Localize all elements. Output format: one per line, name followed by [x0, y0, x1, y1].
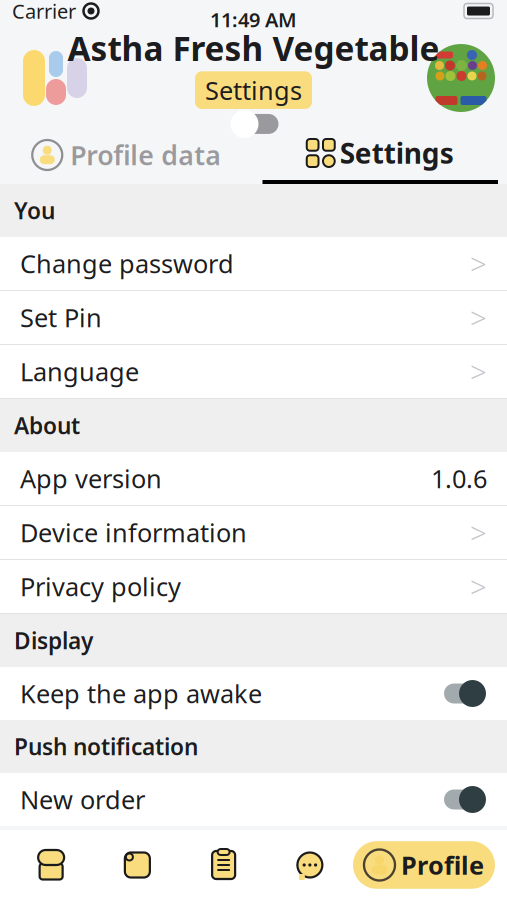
staticText: > [470, 567, 487, 606]
staticText: Change password [20, 247, 234, 280]
staticText: Set Pin [20, 301, 102, 334]
staticText: Device information [20, 516, 247, 549]
staticText: You [14, 195, 55, 225]
staticText: Display [14, 625, 93, 655]
button[interactable]: Home [8, 850, 94, 880]
button[interactable]: Toggle settings [229, 109, 277, 139]
staticText: Profile [401, 848, 484, 882]
button[interactable]: Privacy policy [0, 560, 507, 614]
button[interactable]: Change password [0, 237, 507, 291]
staticText: Settings [340, 134, 454, 172]
button[interactable]: Messages [267, 850, 353, 880]
staticText: > [470, 352, 487, 391]
button[interactable]: Keep the app awake [0, 667, 507, 720]
staticText: About [14, 410, 80, 440]
button[interactable]: New order [0, 773, 507, 826]
staticText: Language [20, 355, 139, 388]
staticText: > [470, 298, 487, 337]
button[interactable]: Profile [353, 841, 499, 889]
button[interactable]: Offers [94, 850, 180, 879]
button[interactable]: Device information [0, 506, 507, 560]
button[interactable]: Language [0, 345, 507, 399]
staticText: App version [20, 462, 162, 495]
staticText [76, 0, 82, 26]
staticText: Push notification [14, 731, 198, 761]
button[interactable]: Settings [253, 126, 507, 184]
staticText: > [470, 244, 487, 283]
staticText: Astha Fresh Vegetable [67, 26, 439, 70]
button[interactable]: Set Pin [0, 291, 507, 345]
staticText: 11:49 AM [210, 6, 297, 33]
staticText: Carrier [12, 0, 76, 24]
button[interactable]: Profile data [0, 126, 253, 184]
staticText: 1.0.6 [431, 462, 487, 495]
staticText: New order [20, 783, 145, 816]
staticText: > [470, 513, 487, 552]
button[interactable]: Orders [180, 849, 267, 881]
staticText: Profile data [70, 137, 221, 173]
staticText: Keep the app awake [20, 677, 262, 710]
button[interactable]: Store profile picture [427, 44, 495, 112]
staticText: Settings [205, 73, 302, 107]
staticText: Privacy policy [20, 570, 181, 603]
